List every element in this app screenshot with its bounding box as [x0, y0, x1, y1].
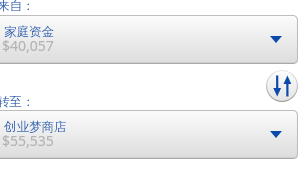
button[interactable]: 创业梦商店 [0, 110, 298, 159]
staticText: 来自： [0, 0, 35, 14]
staticText: 创业梦商店 [4, 119, 67, 135]
button[interactable]: Swap accounts [266, 70, 298, 102]
button[interactable]: 家庭资金 [0, 15, 298, 64]
staticText: 转至： [0, 94, 35, 110]
staticText: $55,535 [2, 131, 54, 150]
staticText: $40,057 [2, 36, 54, 55]
staticText: 家庭资金 [4, 24, 54, 40]
